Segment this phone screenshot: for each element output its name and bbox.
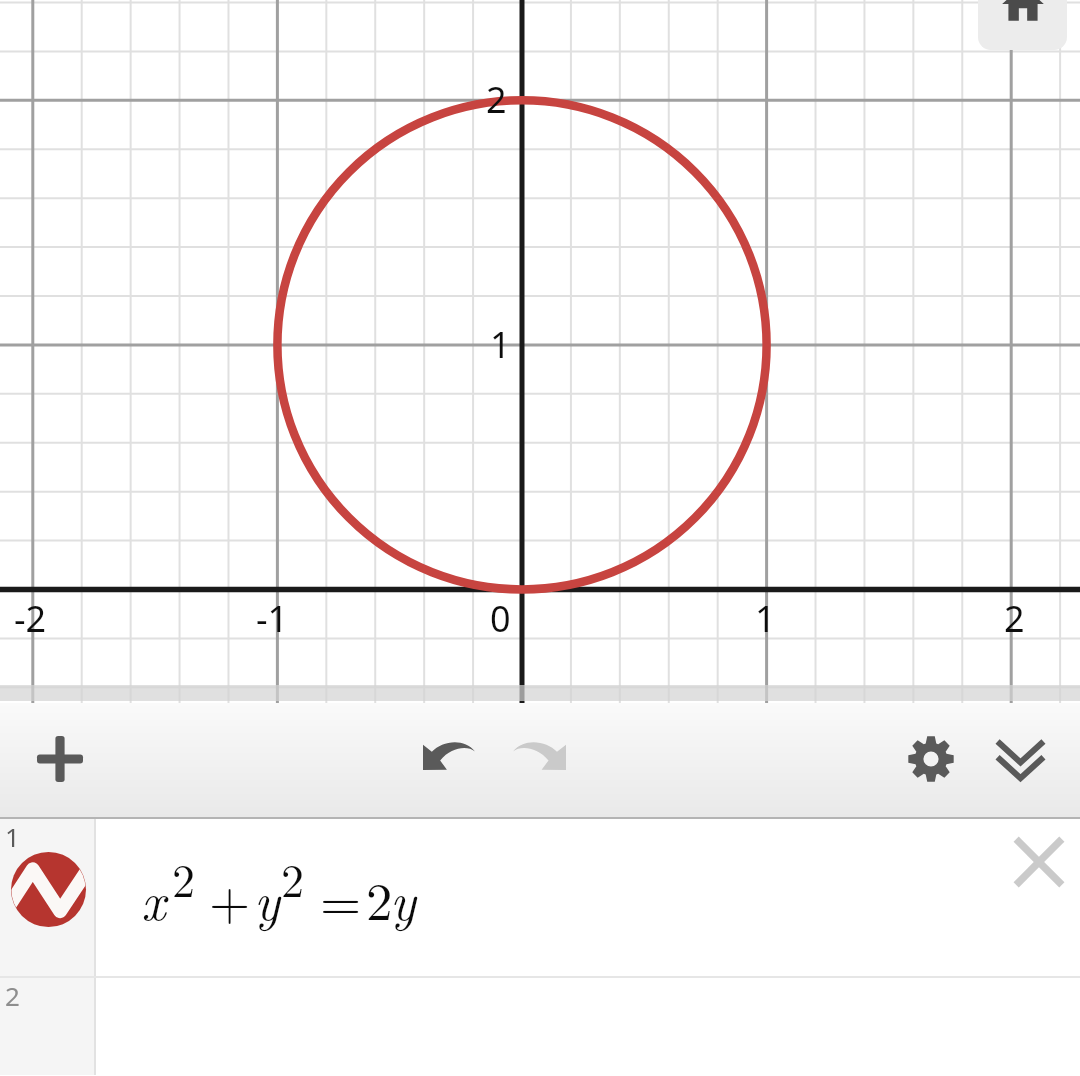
staticText: + [209,860,251,935]
staticText: 2 [172,845,195,910]
button[interactable]: 1 [0,819,1080,976]
staticText: 2 [1004,594,1025,643]
button[interactable]: Collapse keypad [972,706,1069,816]
staticText: 1 [5,819,20,854]
staticText: 1 [755,594,776,643]
staticText: y [390,860,416,935]
staticText: 0 [490,594,511,643]
staticText: 2 [281,845,304,910]
staticText: x [141,860,166,935]
button[interactable]: Add expression [11,704,109,814]
staticText: -1 [256,594,289,643]
button[interactable]: Delete expression [999,822,1079,902]
staticText: 2 [486,75,507,124]
staticText: = [320,860,362,935]
button[interactable]: Settings [882,704,980,814]
button[interactable]: Home [978,0,1067,50]
staticText: y [254,860,280,935]
staticText: 2 [5,978,20,1013]
button[interactable]: 2 [0,978,1080,1075]
staticText: 2 [366,860,393,935]
button[interactable]: Redo [487,700,592,810]
button[interactable]: Undo [397,700,501,810]
staticText: 1 [490,320,511,369]
staticText: -2 [14,594,47,643]
